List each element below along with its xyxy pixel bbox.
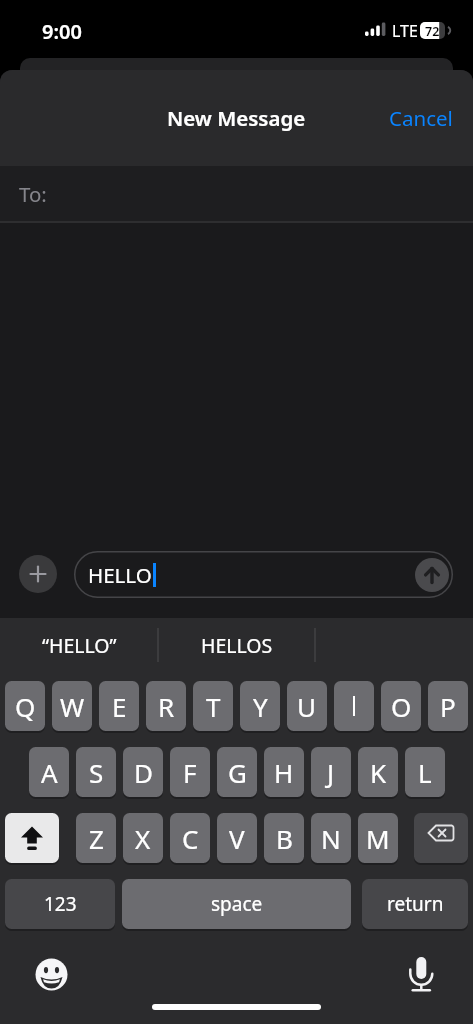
staticText: G xyxy=(228,755,247,790)
button[interactable] xyxy=(334,681,374,731)
staticText: 72 xyxy=(425,23,440,39)
button[interactable]: H xyxy=(264,747,304,797)
button[interactable] xyxy=(35,958,68,991)
button[interactable]: O xyxy=(381,681,421,731)
staticText: M xyxy=(366,821,390,856)
staticText: H xyxy=(274,755,294,790)
button[interactable]: V xyxy=(217,813,257,863)
staticText: N xyxy=(321,821,341,856)
button[interactable] xyxy=(19,555,57,593)
staticText: Y xyxy=(253,689,268,724)
staticText: K xyxy=(370,755,387,790)
button[interactable]: R xyxy=(146,681,186,731)
button[interactable]: E xyxy=(99,681,139,731)
staticText: B xyxy=(276,821,293,856)
button[interactable]: 123 xyxy=(5,879,115,929)
button[interactable]: return xyxy=(362,879,468,929)
button[interactable] xyxy=(415,558,449,592)
button[interactable]: M xyxy=(358,813,398,863)
staticText: To: xyxy=(19,180,47,208)
button[interactable]: Z xyxy=(76,813,116,863)
staticText: P xyxy=(440,689,456,724)
staticText: HELLOS xyxy=(201,632,273,659)
button[interactable]: To: xyxy=(0,166,473,221)
button[interactable]: W xyxy=(52,681,92,731)
staticText: X xyxy=(135,821,151,856)
staticText: L xyxy=(418,755,432,790)
staticText: New Message xyxy=(167,104,306,132)
staticText: 123 xyxy=(44,891,77,917)
button[interactable]: G xyxy=(217,747,257,797)
staticText: Q xyxy=(15,689,36,724)
button[interactable] xyxy=(5,813,59,863)
button[interactable]: HELLOS xyxy=(158,618,315,672)
staticText: LTE xyxy=(392,20,418,42)
button[interactable]: Q xyxy=(5,681,45,731)
button[interactable]: X xyxy=(123,813,163,863)
button[interactable]: B xyxy=(264,813,304,863)
button[interactable]: space xyxy=(122,879,351,929)
button[interactable]: “HELLO” xyxy=(0,618,158,672)
staticText: J xyxy=(327,755,335,790)
staticText: space xyxy=(211,891,263,917)
staticText: U xyxy=(297,689,317,724)
staticText: 9:00 xyxy=(42,18,82,45)
button[interactable]: U xyxy=(287,681,327,731)
button[interactable] xyxy=(414,813,468,863)
button[interactable]: T xyxy=(193,681,233,731)
staticText: E xyxy=(112,689,127,724)
staticText: R xyxy=(158,689,175,724)
staticText: A xyxy=(41,755,58,790)
staticText: T xyxy=(206,689,221,724)
button[interactable]: Y xyxy=(240,681,280,731)
button[interactable]: F xyxy=(170,747,210,797)
staticText: HELLO xyxy=(88,561,152,589)
staticText: W xyxy=(60,689,85,724)
staticText: Z xyxy=(89,821,104,856)
staticText: “HELLO” xyxy=(42,632,117,659)
staticText: V xyxy=(229,821,245,856)
staticText: D xyxy=(134,755,153,790)
button[interactable]: D xyxy=(123,747,163,797)
staticText: C xyxy=(182,821,199,856)
button[interactable]: Cancel xyxy=(389,104,453,132)
staticText: return xyxy=(387,891,444,917)
button[interactable]: K xyxy=(358,747,398,797)
button[interactable]: P xyxy=(428,681,468,731)
button[interactable]: S xyxy=(76,747,116,797)
button[interactable]: J xyxy=(311,747,351,797)
staticText: O xyxy=(391,689,412,724)
staticText: F xyxy=(183,755,197,790)
button[interactable]: A xyxy=(29,747,69,797)
button[interactable] xyxy=(407,954,435,994)
button[interactable]: C xyxy=(170,813,210,863)
staticText: S xyxy=(89,755,104,790)
staticText: Cancel xyxy=(389,104,453,132)
button[interactable]: L xyxy=(405,747,445,797)
button[interactable]: N xyxy=(311,813,351,863)
